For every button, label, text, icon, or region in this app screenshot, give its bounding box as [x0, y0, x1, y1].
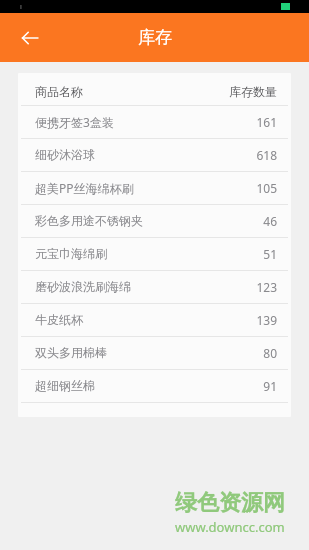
staticText: 105 [233, 180, 277, 196]
staticText: 库存 [138, 27, 172, 48]
staticText: 双头多用棉棒 [35, 345, 107, 360]
button[interactable]: 双头多用棉棒 [18, 337, 291, 369]
button[interactable]: 超美PP丝海绵杯刷 [18, 172, 291, 204]
staticText: 彩色多用途不锈钢夹 [35, 213, 143, 228]
staticText: www.downcc.com [175, 518, 285, 536]
staticText: 绿色资源网 [175, 489, 285, 517]
staticText: 元宝巾海绵刷 [35, 246, 107, 261]
staticText: 库存数量 [221, 84, 277, 99]
staticText: 46 [233, 213, 277, 229]
button[interactable]: 彩色多用途不锈钢夹 [18, 205, 291, 237]
staticText: 超美PP丝海绵杯刷 [35, 180, 134, 196]
staticText: 细砂沐浴球 [35, 147, 95, 162]
button[interactable]: 磨砂波浪洗刷海绵 [18, 271, 291, 303]
staticText: 51 [233, 246, 277, 262]
staticText: 80 [233, 345, 277, 361]
button[interactable]: 牛皮纸杯 [18, 304, 291, 336]
staticText: 牛皮纸杯 [35, 312, 83, 327]
button[interactable]: 便携牙签3盒装 [18, 106, 291, 138]
staticText: 便携牙签3盒装 [35, 114, 114, 130]
button[interactable]: 细砂沐浴球 [18, 139, 291, 171]
staticText: 161 [233, 114, 277, 130]
staticText: 磨砂波浪洗刷海绵 [35, 279, 131, 294]
staticText: 超细钢丝棉 [35, 378, 95, 393]
staticText: 91 [233, 378, 277, 394]
staticText: 139 [233, 312, 277, 328]
button[interactable]: Back [10, 18, 50, 58]
button[interactable]: 元宝巾海绵刷 [18, 238, 291, 270]
staticText: 商品名称 [35, 84, 221, 99]
staticText: 618 [233, 147, 277, 163]
button[interactable]: 超细钢丝棉 [18, 370, 291, 402]
staticText: 123 [233, 279, 277, 295]
